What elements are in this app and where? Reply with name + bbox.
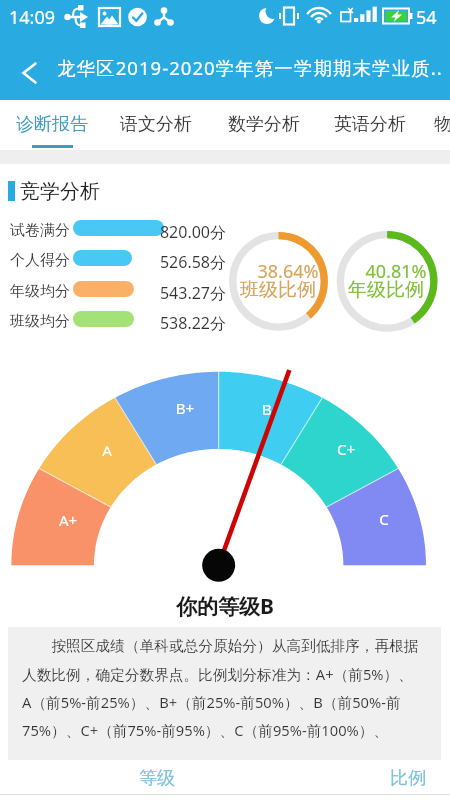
staticText: 比例 bbox=[390, 767, 426, 790]
staticText: C bbox=[364, 509, 404, 529]
staticText: 竞学分析 bbox=[20, 179, 100, 204]
staticText: 526.58分 bbox=[155, 251, 226, 273]
staticText: 等级 bbox=[139, 767, 175, 790]
staticText: 个人得分 bbox=[10, 251, 70, 270]
staticText: 14:09 bbox=[9, 5, 56, 30]
button[interactable]: 数学分析 bbox=[212, 100, 316, 150]
staticText: 538.22分 bbox=[155, 312, 226, 334]
staticText: 语文分析 bbox=[120, 113, 192, 136]
staticText: 年级均分 bbox=[10, 282, 70, 301]
staticText: A+ bbox=[48, 510, 88, 530]
staticText: 诊断报告 bbox=[16, 113, 88, 136]
staticText: C+ bbox=[326, 439, 366, 459]
staticText: 数学分析 bbox=[228, 113, 300, 136]
button[interactable]: Back bbox=[6, 45, 52, 100]
staticText: 38.64% bbox=[248, 259, 328, 284]
staticText: 820.00分 bbox=[155, 221, 226, 243]
staticText: 你的等级B bbox=[0, 592, 450, 621]
staticText: 物 bbox=[434, 113, 450, 136]
button[interactable]: 诊断报告 bbox=[0, 100, 104, 150]
staticText: 试卷满分 bbox=[10, 221, 70, 240]
staticText: B+ bbox=[165, 398, 205, 418]
staticText: 543.27分 bbox=[155, 282, 226, 304]
button[interactable]: 语文分析 bbox=[104, 100, 208, 150]
button[interactable]: 物 bbox=[420, 100, 450, 150]
staticText: 英语分析 bbox=[334, 113, 406, 136]
button[interactable]: 英语分析 bbox=[318, 100, 422, 150]
staticText: A bbox=[87, 440, 127, 460]
staticText: 40.81% bbox=[356, 259, 436, 284]
staticText: 龙华区2019-2020学年第一学期期末学业质.. bbox=[57, 55, 443, 80]
staticText: 班级比例 bbox=[233, 278, 323, 302]
button[interactable]: 等级 bbox=[112, 763, 202, 794]
staticText: B bbox=[247, 399, 287, 419]
button[interactable]: 比例 bbox=[363, 763, 450, 794]
staticText: 按照区成绩（单科或总分原始分）从高到低排序，再根据人数比例，确定分数界点。比例划… bbox=[22, 635, 420, 740]
staticText: 年级比例 bbox=[341, 278, 431, 302]
staticText: 班级均分 bbox=[10, 312, 70, 331]
staticText: 54 bbox=[416, 5, 437, 30]
